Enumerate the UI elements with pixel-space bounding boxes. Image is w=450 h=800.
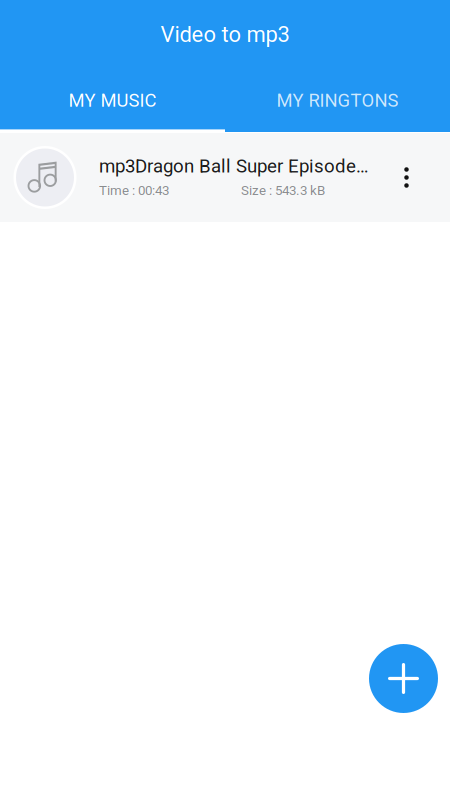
button[interactable]: Add <box>369 644 438 713</box>
staticText: MY RINGTONS <box>276 90 398 111</box>
staticText: Video to mp3 <box>160 22 289 47</box>
button[interactable]: MY RINGTONS <box>225 69 450 132</box>
button[interactable]: MY MUSIC <box>0 69 225 132</box>
staticText: mp3Dragon Ball Super Episode… <box>99 155 368 177</box>
staticText: MY MUSIC <box>68 90 156 111</box>
button[interactable]: mp3Dragon Ball Super Episode… <box>0 133 450 222</box>
staticText: Size : 543.3 kB <box>241 183 325 198</box>
staticText: Time : 00:43 <box>99 183 169 198</box>
